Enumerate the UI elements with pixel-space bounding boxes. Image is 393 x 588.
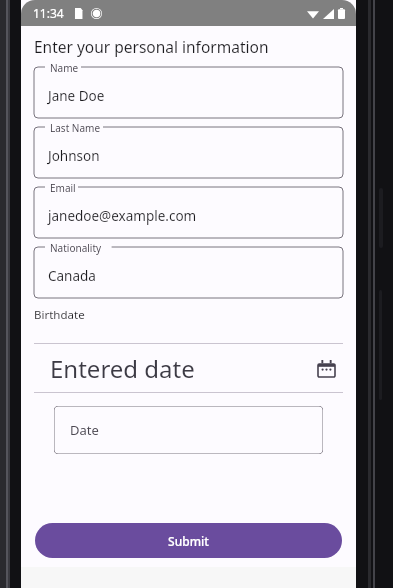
button[interactable]: Nationality <box>34 247 343 298</box>
staticText: 11:34 <box>33 5 64 21</box>
button[interactable]: Pick date <box>314 356 338 380</box>
staticText: Enter your personal information <box>34 36 269 57</box>
staticText: Jane Doe <box>48 87 105 105</box>
staticText: Canada <box>48 267 96 285</box>
staticText: Name <box>50 61 79 75</box>
staticText: Entered date <box>50 352 195 385</box>
staticText: Johnson <box>48 147 100 165</box>
staticText: Birthdate <box>34 307 85 323</box>
button[interactable]: Submit <box>35 523 342 558</box>
staticText: Date <box>70 421 99 439</box>
button[interactable]: Email <box>34 187 343 238</box>
button[interactable]: Last Name <box>34 127 343 178</box>
staticText: Last Name <box>50 121 101 135</box>
staticText: Nationality <box>50 241 102 255</box>
staticText: janedoe@example.com <box>48 207 197 225</box>
staticText: Email <box>50 181 76 195</box>
button[interactable]: Name <box>34 67 343 118</box>
button[interactable]: Entered date <box>21 344 356 392</box>
staticText: Submit <box>168 533 209 549</box>
button[interactable]: Date <box>54 406 323 454</box>
